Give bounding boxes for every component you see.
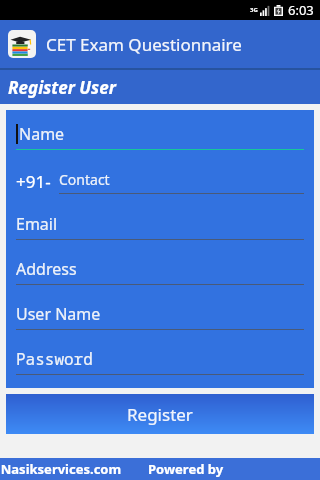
button[interactable]: Register: [6, 394, 314, 434]
staticText: Register User: [8, 76, 116, 99]
staticText: Email: [16, 213, 58, 235]
staticText: User Name: [16, 303, 101, 325]
button[interactable]: Name: [6, 114, 314, 159]
staticText: CET Exam Questionnaire: [46, 33, 242, 56]
staticText: 6:03: [288, 1, 314, 19]
staticText: +91-: [16, 170, 51, 193]
staticText: Register: [127, 403, 193, 426]
staticText: Password: [16, 348, 93, 370]
staticText: Powered by Nasikservices.com: [148, 460, 302, 478]
button[interactable]: User Name: [6, 294, 314, 339]
staticText: Contact: [59, 170, 110, 189]
staticText: Address: [16, 258, 77, 280]
staticText: 3G: [250, 6, 258, 14]
button[interactable]: Address: [6, 249, 314, 294]
staticText: Name: [19, 123, 65, 145]
button[interactable]: +91-: [6, 159, 314, 204]
button[interactable]: Email: [6, 204, 314, 249]
button[interactable]: Password: [6, 339, 314, 384]
staticText: by Nasikservices.com: [0, 460, 122, 478]
button[interactable]: by Nasikservices.com: [0, 458, 320, 480]
